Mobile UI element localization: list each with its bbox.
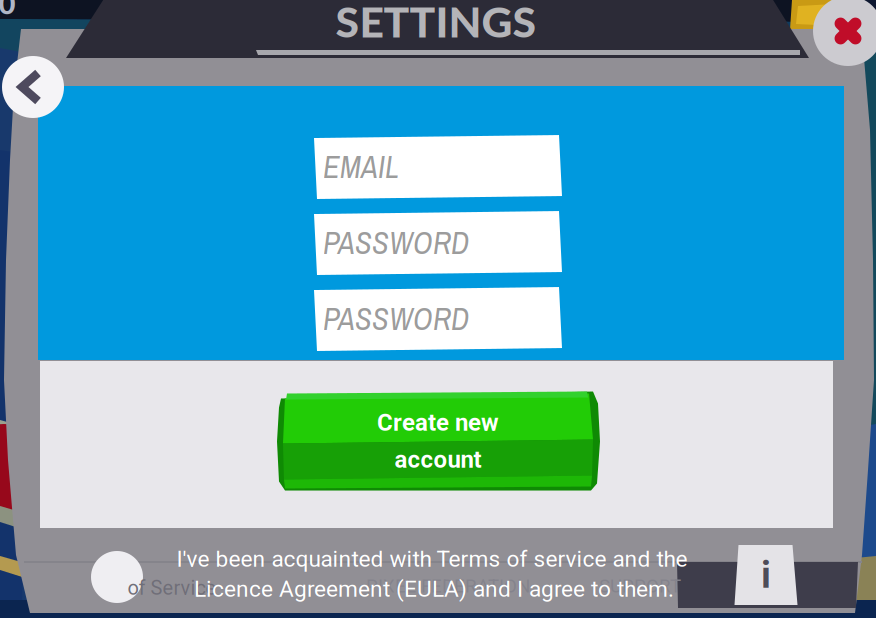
staticText: I've been acquainted with Terms of servi… (176, 546, 687, 572)
staticText: account (394, 445, 481, 474)
staticText: PIXEL FEDERATION (366, 575, 530, 597)
button[interactable]: Info (734, 545, 797, 605)
staticText: SETTINGS (335, 0, 536, 47)
button[interactable]: Close (813, 0, 876, 66)
staticText: Licence Agreement (EULA) and I agree to … (194, 576, 674, 602)
button[interactable]: EMAIL (314, 135, 562, 199)
staticText: PASSWORD (323, 222, 469, 264)
button[interactable]: PASSWORD (314, 211, 562, 275)
staticText: i (761, 553, 771, 597)
staticText: SUPPORT (599, 575, 681, 597)
staticText: PASSWORD (323, 298, 469, 340)
staticText: 0 (0, 0, 15, 21)
button[interactable]: PASSWORD (314, 287, 562, 351)
button[interactable]: Back (2, 56, 64, 118)
button[interactable]: Create new (277, 391, 599, 490)
staticText: of Service (127, 576, 216, 600)
staticText: Create new (377, 408, 499, 436)
staticText: EMAIL (323, 146, 399, 188)
button[interactable]: I agree (91, 551, 143, 603)
